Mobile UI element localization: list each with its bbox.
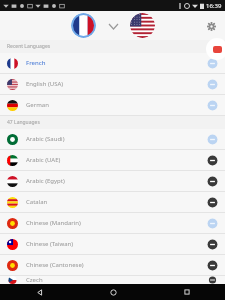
button[interactable]: YouTube xyxy=(206,38,225,60)
button[interactable]: Czech xyxy=(0,276,225,284)
staticText: Arabic (UAE) xyxy=(26,156,207,164)
button[interactable]: Chinese (Mandarin) xyxy=(0,213,225,233)
staticText: Catalan xyxy=(26,198,207,206)
button[interactable]: Back xyxy=(32,285,46,299)
staticText: French xyxy=(26,59,207,67)
button[interactable]: Arabic (Egypt) xyxy=(0,171,225,191)
staticText: 47 Languages xyxy=(7,119,40,126)
staticText: Arabic (Egypt) xyxy=(26,177,207,185)
button[interactable]: Download Chinese (Cantonese) xyxy=(207,260,218,271)
button[interactable]: Home xyxy=(106,285,120,299)
button[interactable]: Recent apps xyxy=(180,285,194,299)
button[interactable]: Download Catalan xyxy=(207,197,218,208)
button[interactable]: Download Arabic (Egypt) xyxy=(207,176,218,187)
staticText: English (USA) xyxy=(26,80,207,88)
button[interactable]: English (USA) xyxy=(0,74,225,94)
button[interactable]: Settings xyxy=(203,18,219,34)
button[interactable]: Download Czech xyxy=(207,276,218,284)
staticText: Recent Languages xyxy=(7,43,51,50)
button[interactable]: Download Chinese (Taiwan) xyxy=(207,239,218,250)
button[interactable]: Download Arabic (UAE) xyxy=(207,155,218,166)
staticText: Czech xyxy=(26,276,207,284)
button[interactable]: Download English (USA) xyxy=(207,79,218,90)
button[interactable]: Download French xyxy=(207,58,218,69)
button[interactable]: Swap languages xyxy=(106,19,120,33)
staticText: Arabic (Saudi) xyxy=(26,135,207,143)
button[interactable]: Arabic (UAE) xyxy=(0,150,225,170)
button[interactable]: Arabic (Saudi) xyxy=(0,129,225,149)
button[interactable]: French xyxy=(0,53,225,73)
button[interactable]: Chinese (Taiwan) xyxy=(0,234,225,254)
button[interactable]: Download Arabic (Saudi) xyxy=(207,134,218,145)
button[interactable]: Chinese (Cantonese) xyxy=(0,255,225,275)
button[interactable]: Download German xyxy=(207,100,218,111)
staticText: Chinese (Taiwan) xyxy=(26,240,207,248)
button[interactable]: Source language French xyxy=(71,13,96,38)
button[interactable]: Catalan xyxy=(0,192,225,212)
button[interactable]: Target language English USA xyxy=(130,13,155,38)
button[interactable]: German xyxy=(0,95,225,115)
staticText: German xyxy=(26,101,207,109)
staticText: Chinese (Mandarin) xyxy=(26,219,207,227)
staticText: 16:39 xyxy=(206,2,222,10)
staticText: Chinese (Cantonese) xyxy=(26,261,207,269)
button[interactable]: Download Chinese (Mandarin) xyxy=(207,218,218,229)
